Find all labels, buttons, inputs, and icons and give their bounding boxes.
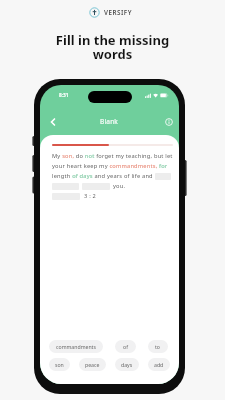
button[interactable]: of: [115, 340, 136, 353]
staticText: you.: [113, 182, 126, 190]
staticText: days: [121, 361, 133, 368]
staticText: commandments: [56, 343, 96, 350]
staticText: son: [55, 361, 64, 368]
button[interactable]: [46, 115, 59, 128]
staticText: of: [123, 343, 128, 350]
button[interactable]: days: [115, 358, 139, 371]
staticText: to: [155, 343, 161, 350]
button[interactable]: [162, 115, 175, 128]
button[interactable]: to: [148, 340, 168, 353]
staticText: 8:31: [59, 92, 69, 99]
button[interactable]: VERSIFY: [89, 7, 133, 18]
button[interactable]: son: [49, 358, 70, 371]
staticText: Blank: [100, 117, 119, 126]
button[interactable]: peace: [79, 358, 106, 371]
staticText: peace: [85, 361, 100, 368]
staticText: your heart keep my commandments, for: [52, 162, 168, 170]
button[interactable]: commandments: [49, 340, 103, 353]
staticText: Fill in the missing words: [0, 31, 225, 63]
staticText: add: [154, 361, 164, 368]
staticText: VERSIFY: [104, 8, 133, 17]
staticText: length of days and years of life and: [52, 172, 155, 180]
button[interactable]: add: [148, 358, 170, 371]
staticText: 3 : 2: [84, 192, 96, 200]
staticText: My son, do not forget my teaching, but l…: [52, 152, 173, 160]
